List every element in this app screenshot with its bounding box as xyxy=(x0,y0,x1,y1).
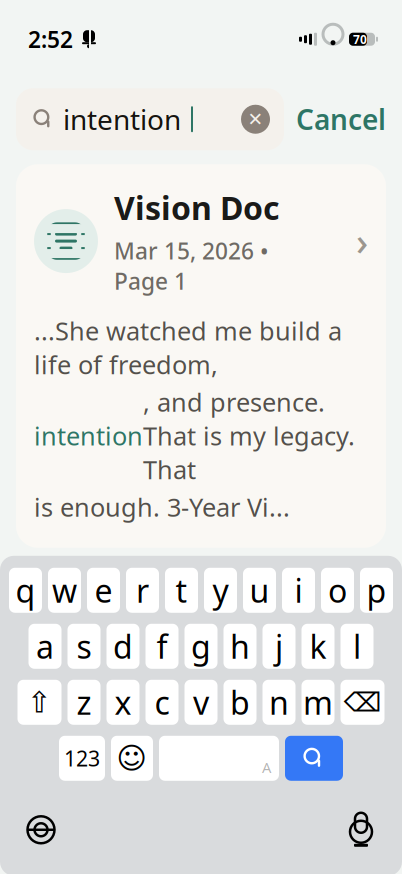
button[interactable]: y xyxy=(204,568,237,613)
button[interactable]: Emoji xyxy=(111,736,153,781)
staticText: b xyxy=(230,681,250,723)
button[interactable]: Vision Doc xyxy=(16,164,386,548)
button[interactable]: r xyxy=(126,568,159,613)
button[interactable]: i xyxy=(282,568,315,613)
button[interactable]: Search xyxy=(285,736,343,781)
staticText: a xyxy=(36,625,54,667)
staticText: c xyxy=(154,681,169,723)
staticText: x xyxy=(114,681,131,723)
staticText: 70 xyxy=(353,31,367,47)
staticText: n xyxy=(269,681,289,723)
staticText: d xyxy=(113,625,133,667)
button[interactable]: k xyxy=(301,624,334,669)
staticText: z xyxy=(76,681,91,723)
staticText: intention xyxy=(63,101,181,138)
staticText: m xyxy=(303,681,333,723)
button[interactable]: d xyxy=(106,624,139,669)
staticText: ✕ xyxy=(247,109,263,130)
button[interactable]: Space xyxy=(159,736,279,781)
staticText: 2:52 xyxy=(28,24,73,54)
staticText: A xyxy=(262,757,271,777)
staticText: w xyxy=(52,569,77,611)
staticText: p xyxy=(366,569,386,611)
button[interactable]: b xyxy=(223,680,256,725)
button[interactable]: v xyxy=(184,680,217,725)
staticText: t xyxy=(175,569,187,611)
button[interactable]: j xyxy=(262,624,295,669)
staticText: Cancel xyxy=(296,101,386,138)
button[interactable]: Dictate xyxy=(346,814,376,846)
staticText: k xyxy=(309,625,326,667)
button[interactable]: s xyxy=(67,624,100,669)
staticText: s xyxy=(76,625,91,667)
button[interactable]: Shift xyxy=(17,680,61,725)
button[interactable]: 123 xyxy=(59,736,105,781)
button[interactable]: m xyxy=(301,680,334,725)
staticText: v xyxy=(193,681,209,723)
staticText: Vision Doc xyxy=(114,186,280,229)
staticText: › xyxy=(356,216,368,266)
staticText: ⌫ xyxy=(343,687,381,717)
button[interactable]: Clear text xyxy=(241,105,270,134)
staticText: l xyxy=(353,625,361,667)
staticText: u xyxy=(249,569,269,611)
button[interactable]: p xyxy=(360,568,393,613)
staticText: 123 xyxy=(64,744,100,772)
staticText: g xyxy=(191,625,211,667)
staticText: is enough. 3-Year Vi... xyxy=(34,490,290,524)
button[interactable]: g xyxy=(184,624,217,669)
staticText: f xyxy=(156,625,167,667)
button[interactable]: Next keyboard xyxy=(26,815,56,845)
staticText: ⇧ xyxy=(27,686,52,719)
button[interactable]: l xyxy=(340,624,373,669)
staticText: q xyxy=(15,569,35,611)
button[interactable]: z xyxy=(67,680,100,725)
button[interactable]: c xyxy=(145,680,178,725)
staticText: h xyxy=(230,625,250,667)
button[interactable]: Delete xyxy=(340,680,384,725)
button[interactable]: a xyxy=(28,624,61,669)
staticText: Mar 15, 2026 • Page 1 xyxy=(114,236,269,296)
staticText: ☺ xyxy=(116,742,147,775)
staticText: , and presence. That is my legacy. That xyxy=(143,385,355,486)
button[interactable]: n xyxy=(262,680,295,725)
button[interactable]: u xyxy=(243,568,276,613)
staticText: ...She watched me build a life of freedo… xyxy=(34,314,342,381)
button[interactable]: t xyxy=(165,568,198,613)
button[interactable]: h xyxy=(223,624,256,669)
button[interactable]: x xyxy=(106,680,139,725)
staticText: r xyxy=(136,569,149,611)
staticText: e xyxy=(94,569,112,611)
button[interactable]: e xyxy=(87,568,120,613)
staticText: intention xyxy=(34,419,143,452)
staticText: i xyxy=(294,569,302,611)
staticText: y xyxy=(212,569,228,611)
staticText: o xyxy=(328,569,347,611)
button[interactable]: f xyxy=(145,624,178,669)
staticText: j xyxy=(275,625,283,667)
button[interactable]: w xyxy=(48,568,81,613)
button[interactable]: o xyxy=(321,568,354,613)
button[interactable]: q xyxy=(9,568,42,613)
button[interactable]: Cancel xyxy=(296,101,386,138)
